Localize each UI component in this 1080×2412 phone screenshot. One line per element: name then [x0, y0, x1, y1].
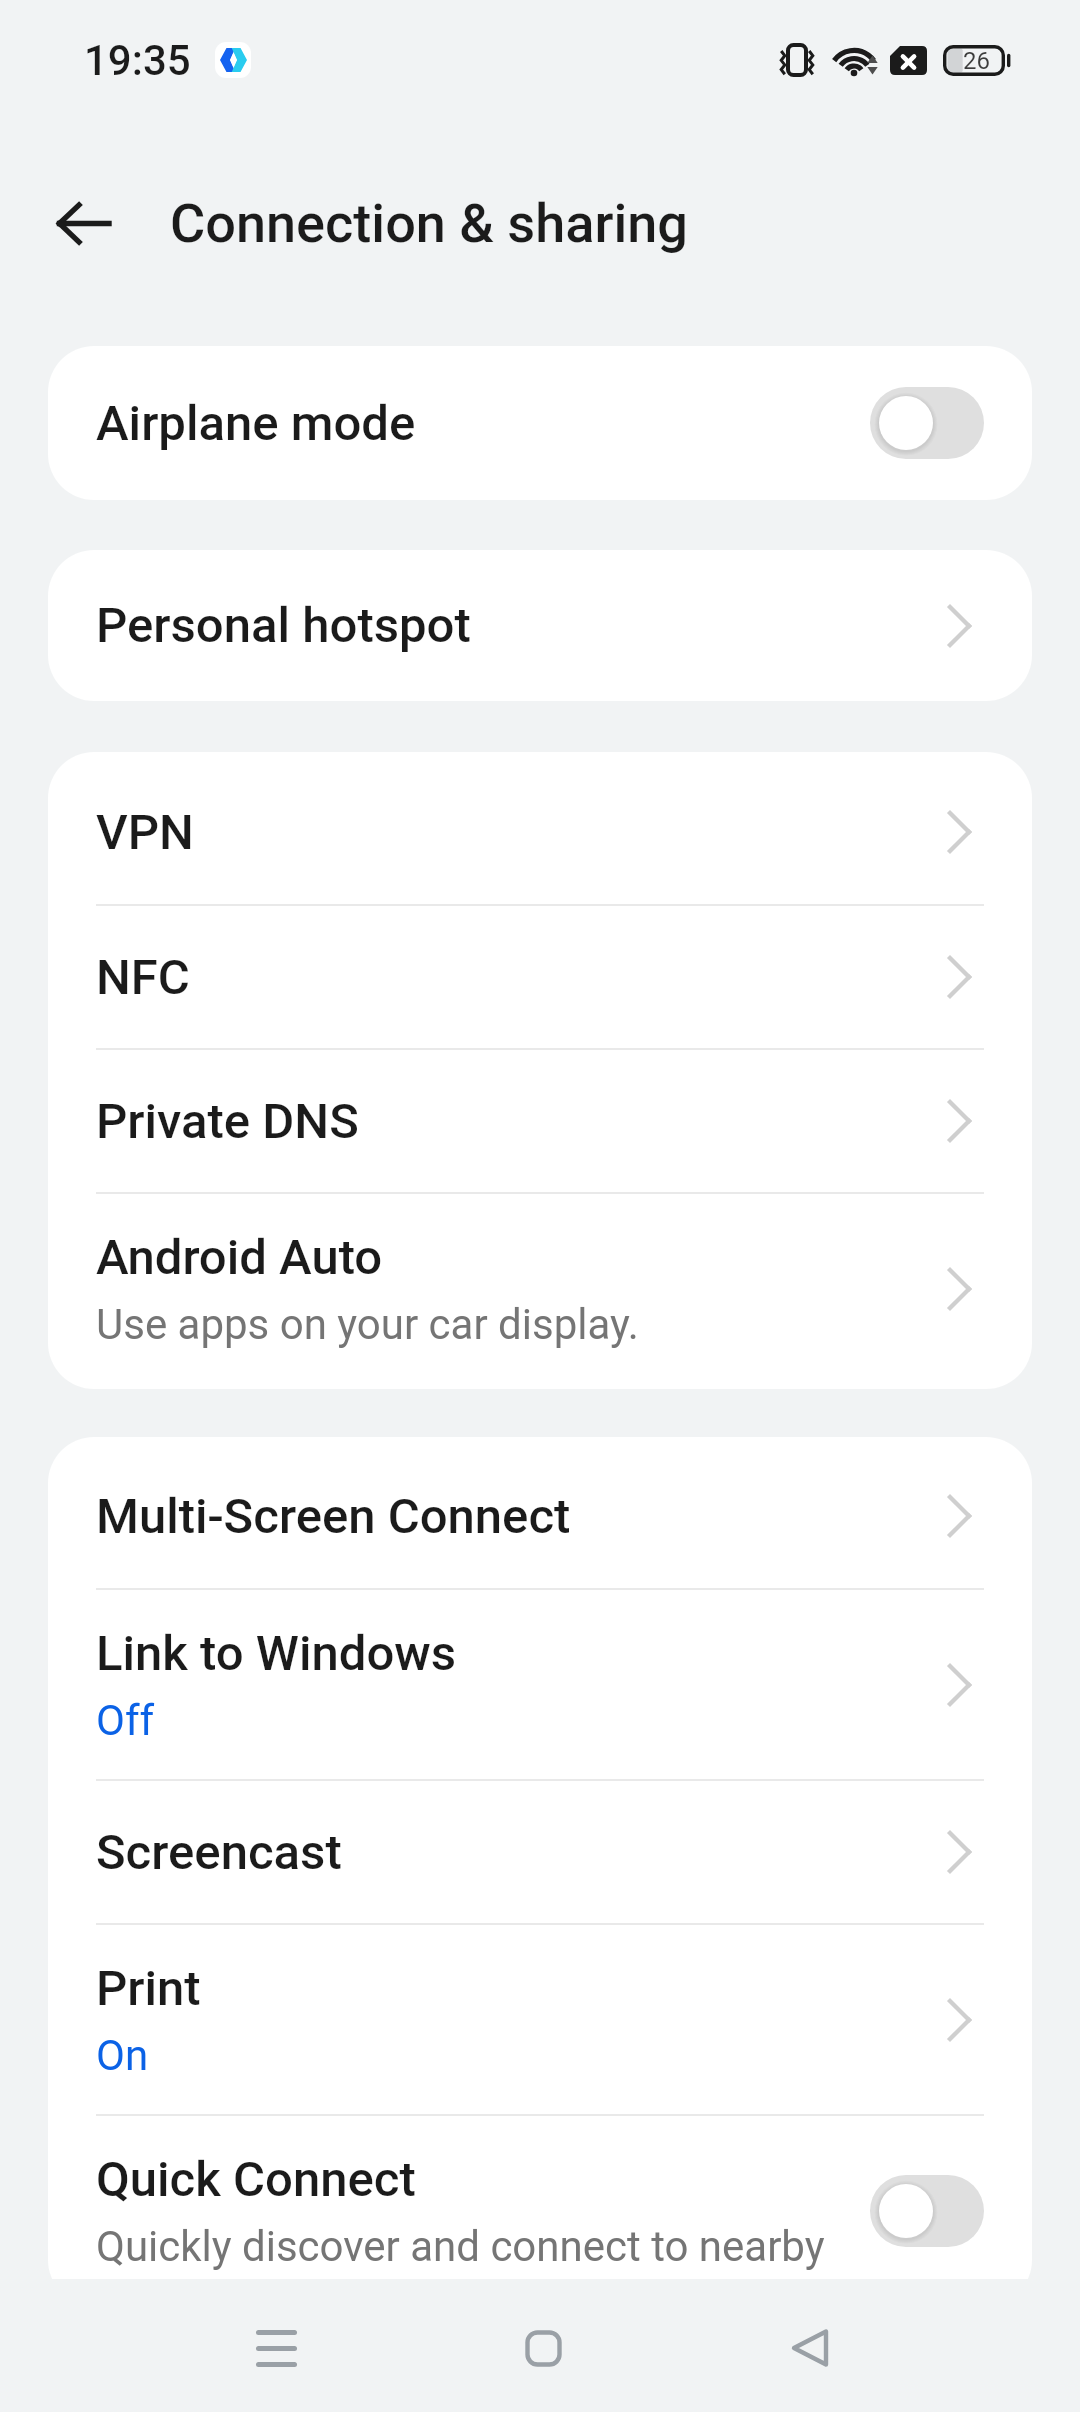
staticText: NFC — [96, 949, 190, 1006]
staticText: 19:35 — [84, 36, 191, 85]
button[interactable]: Recent apps — [206, 2282, 346, 2412]
button[interactable]: Private DNS — [48, 1050, 1032, 1192]
staticText: Screencast — [96, 1824, 342, 1881]
staticText: Multi-Screen Connect — [96, 1488, 571, 1545]
staticText: Personal hotspot — [96, 597, 471, 654]
button[interactable]: VPN — [48, 760, 1032, 904]
button[interactable]: Home — [473, 2282, 613, 2412]
staticText: VPN — [96, 804, 194, 861]
button[interactable]: Back — [42, 181, 126, 265]
button[interactable]: Print — [48, 1925, 1032, 2114]
staticText: Link to Windows — [96, 1625, 457, 1682]
staticText: Connection & sharing — [170, 192, 688, 255]
staticText: On — [96, 2031, 149, 2080]
staticText: 26 — [963, 47, 990, 75]
staticText: Use apps on your car display. — [96, 1300, 639, 1349]
button[interactable]: NFC — [48, 906, 1032, 1048]
button[interactable]: Quick Connect, off — [870, 2175, 984, 2247]
button[interactable]: Personal hotspot — [48, 550, 1032, 701]
staticText: Airplane mode — [96, 395, 416, 452]
button[interactable]: Back — [740, 2282, 880, 2412]
staticText: Quick Connect — [96, 2151, 416, 2208]
button[interactable]: Quick Connect — [48, 2116, 1032, 2306]
button[interactable]: Multi-Screen Connect — [48, 1444, 1032, 1588]
button[interactable]: Airplane mode — [48, 346, 1032, 500]
button[interactable]: Airplane mode, off — [870, 387, 984, 459]
button[interactable]: Android Auto — [48, 1194, 1032, 1384]
staticText: Android Auto — [96, 1229, 383, 1286]
staticText: Quickly discover and connect to nearby — [96, 2222, 825, 2271]
button[interactable]: Screencast — [48, 1781, 1032, 1923]
staticText: Private DNS — [96, 1093, 359, 1150]
staticText: Print — [96, 1960, 201, 2017]
staticText: Off — [96, 1696, 155, 1745]
button[interactable]: Link to Windows — [48, 1590, 1032, 1779]
